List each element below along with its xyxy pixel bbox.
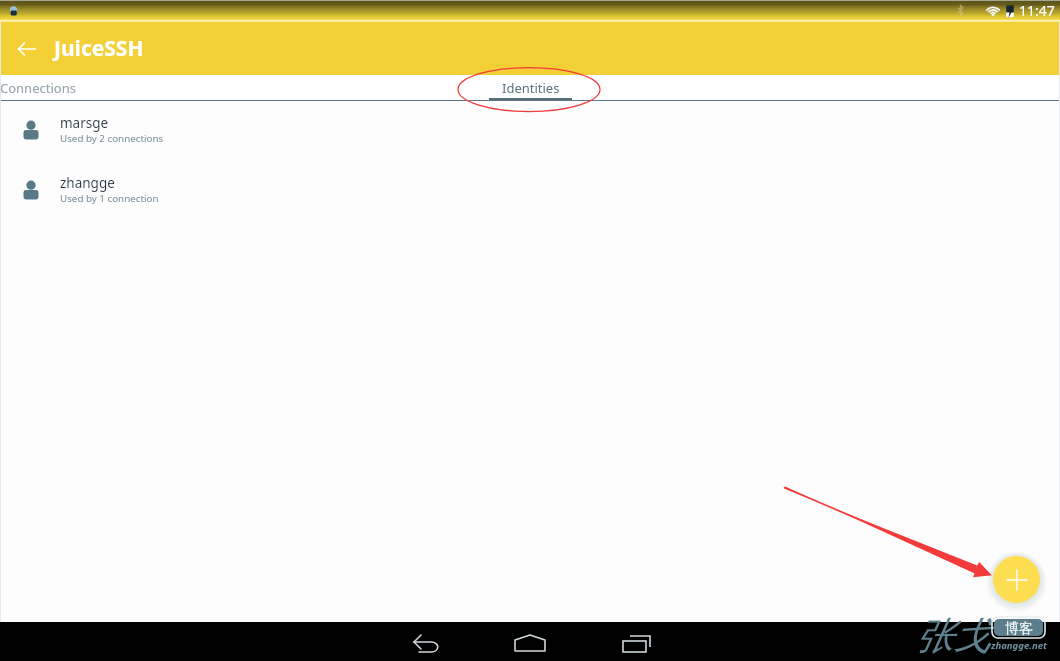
- button[interactable]: Identities: [489, 75, 572, 101]
- button[interactable]: zhangge: [0, 161, 1060, 221]
- staticText: JuiceSSH: [54, 34, 144, 63]
- staticText: Connections: [0, 79, 76, 97]
- staticText: zhangge: [60, 174, 115, 192]
- staticText: Used by 2 connections: [60, 132, 164, 145]
- button[interactable]: Add identity: [993, 556, 1040, 603]
- button[interactable]: Back: [400, 622, 448, 661]
- button[interactable]: Home: [506, 622, 554, 661]
- staticText: zhangge.net: [991, 639, 1047, 652]
- staticText: 11:47: [1019, 1, 1055, 20]
- button[interactable]: marsge: [0, 101, 1060, 161]
- button[interactable]: Connections: [0, 75, 115, 101]
- button[interactable]: Recent apps: [612, 622, 660, 661]
- staticText: marsge: [60, 114, 109, 132]
- staticText: 博客: [1005, 620, 1033, 638]
- staticText: 张戈: [915, 612, 991, 660]
- staticText: Used by 1 connection: [60, 192, 159, 205]
- button[interactable]: Navigate up: [10, 32, 44, 66]
- staticText: Identities: [502, 79, 560, 97]
